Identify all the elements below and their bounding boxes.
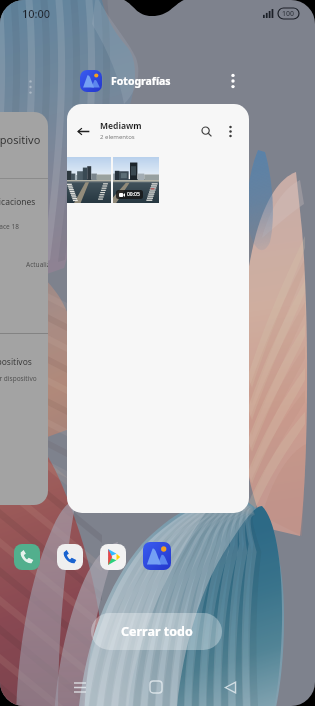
button[interactable]: Home — [138, 669, 174, 705]
staticText: Actualizaciones... — [26, 260, 48, 269]
staticText: Cerrar todo — [121, 623, 193, 640]
staticText: Aplicaciones — [0, 196, 36, 208]
button[interactable]: 00:05 — [113, 157, 159, 203]
staticText: Mediawm — [100, 120, 142, 132]
button[interactable]: Photos app — [143, 542, 171, 570]
staticText: 00:05 — [127, 191, 140, 198]
button[interactable]: More options — [220, 68, 246, 94]
button[interactable]: Ajustes del dispositivo — [0, 112, 48, 505]
button[interactable]: Cerrar todo — [91, 613, 222, 650]
button[interactable] — [67, 157, 111, 203]
staticText: Enlace 18 — [0, 222, 19, 231]
button[interactable]: Play Store — [100, 544, 126, 570]
staticText: 100 — [282, 9, 295, 19]
button[interactable]: WhatsApp — [14, 544, 40, 570]
staticText: 2 elementos — [100, 133, 135, 141]
button[interactable]: Search — [194, 119, 218, 143]
staticText: Dispositivos — [0, 356, 32, 368]
button[interactable]: Back — [67, 104, 249, 513]
button[interactable]: Recents — [62, 669, 98, 705]
button[interactable]: Menu — [219, 120, 241, 142]
staticText: Fotografías — [111, 74, 171, 88]
button[interactable]: Back — [71, 119, 95, 143]
staticText: Añadir dispositivo — [0, 374, 37, 383]
button[interactable]: Back — [212, 669, 248, 705]
button[interactable]: Photos app — [80, 70, 102, 92]
staticText: 10:00 — [22, 6, 51, 21]
button[interactable]: Phone — [57, 544, 83, 570]
staticText: Ajustes del dispositivo — [0, 132, 41, 147]
